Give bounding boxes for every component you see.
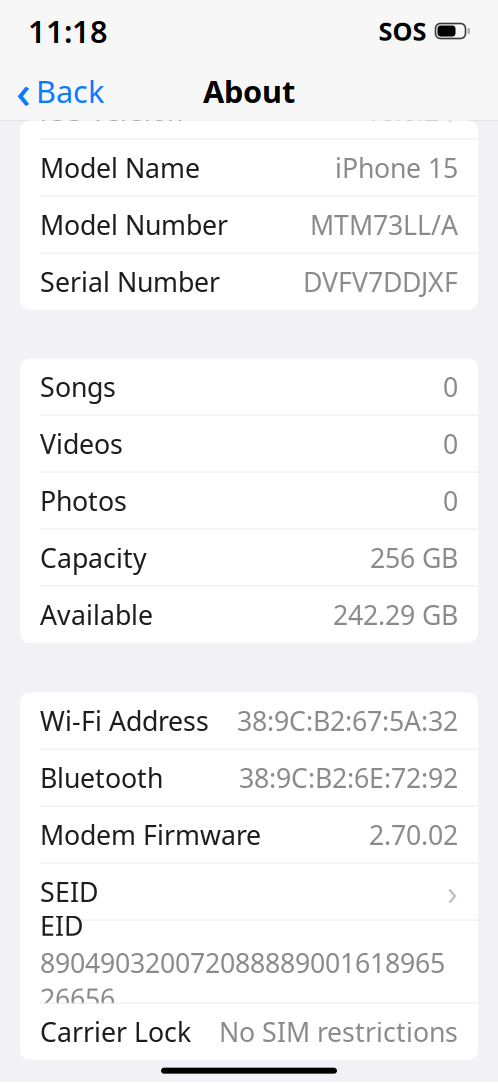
- button[interactable]: Model Name: [20, 140, 478, 196]
- staticText: About: [203, 71, 295, 111]
- staticText: Back: [36, 71, 104, 111]
- button[interactable]: EID: [20, 921, 478, 1003]
- button[interactable]: Capacity: [20, 530, 478, 586]
- staticText: Songs: [40, 369, 116, 404]
- button[interactable]: Carrier Lock: [20, 1004, 478, 1060]
- staticText: ›: [447, 88, 458, 134]
- staticText: SEID: [40, 874, 98, 909]
- staticText: 38:9C:B2:6E:72:92: [239, 760, 458, 795]
- staticText: DVFV7DDJXF: [303, 264, 458, 299]
- staticText: Serial Number: [40, 264, 220, 299]
- staticText: 89049032007208888900161896526656: [40, 945, 445, 1016]
- staticText: Wi-Fi Address: [40, 703, 209, 738]
- staticText: 242.29 GB: [333, 597, 458, 632]
- button[interactable]: Model Number: [20, 197, 478, 253]
- staticText: 18.0.2: [365, 93, 439, 128]
- staticText: iOS Version: [40, 93, 183, 128]
- button[interactable]: Bluetooth: [20, 750, 478, 806]
- button[interactable]: Songs: [20, 359, 478, 415]
- staticText: MTM73LL/A: [310, 207, 458, 242]
- staticText: EID: [40, 908, 83, 943]
- button[interactable]: SEID: [20, 864, 478, 920]
- staticText: 0: [443, 426, 458, 461]
- staticText: Model Name: [40, 150, 200, 185]
- staticText: No SIM restrictions: [219, 1014, 458, 1049]
- button[interactable]: ‹: [4, 68, 116, 114]
- staticText: Carrier Lock: [40, 1014, 191, 1049]
- staticText: iPhone 15: [335, 150, 458, 185]
- button[interactable]: Wi-Fi Address: [20, 693, 478, 749]
- staticText: Available: [40, 597, 153, 632]
- staticText: SOS: [378, 14, 426, 48]
- staticText: Model Number: [40, 207, 228, 242]
- button[interactable]: Photos: [20, 473, 478, 529]
- button[interactable]: Modem Firmware: [20, 807, 478, 863]
- staticText: Photos: [40, 483, 127, 518]
- staticText: 38:9C:B2:67:5A:32: [237, 703, 458, 738]
- staticText: 11:18: [28, 11, 108, 51]
- staticText: Capacity: [40, 540, 147, 575]
- staticText: 256 GB: [370, 540, 458, 575]
- staticText: 0: [443, 369, 458, 404]
- button[interactable]: Serial Number: [20, 254, 478, 310]
- staticText: Modem Firmware: [40, 817, 261, 852]
- staticText: Bluetooth: [40, 760, 163, 795]
- staticText: ‹: [16, 61, 31, 121]
- staticText: Videos: [40, 426, 123, 461]
- staticText: 2.70.02: [369, 817, 458, 852]
- staticText: ›: [447, 869, 458, 915]
- button[interactable]: Videos: [20, 416, 478, 472]
- staticText: 0: [443, 483, 458, 518]
- button[interactable]: Available: [20, 587, 478, 643]
